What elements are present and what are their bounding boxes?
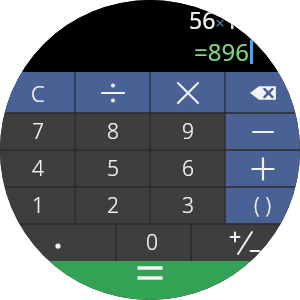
staticText: 9 [182,117,194,146]
button[interactable]: Equals [0,261,300,300]
button[interactable]: 1 [0,187,75,224]
button[interactable]: ( ) [225,187,300,224]
button[interactable]: Multiply [150,72,225,113]
button[interactable]: Backspace [225,72,300,113]
button[interactable]: C [0,72,75,113]
staticText: 7 [32,117,44,146]
staticText: 5 [107,154,119,183]
button[interactable]: Plus [225,150,300,187]
button[interactable]: 7 [0,113,75,150]
staticText: 56×16 [189,4,252,35]
button[interactable]: 56×16 [0,0,300,72]
button[interactable]: Plus minus sign [189,224,300,261]
button[interactable]: 9 [150,113,225,150]
staticText: ( ) [254,191,272,220]
button[interactable]: 2 [75,187,150,224]
staticText: 4 [32,154,44,183]
button[interactable]: 3 [150,187,225,224]
staticText: =896 [194,35,249,68]
staticText: C [31,78,45,108]
staticText: 6 [182,154,194,183]
staticText: 1 [32,191,44,220]
button[interactable]: Divide [75,72,150,113]
button[interactable]: 8 [75,113,150,150]
staticText: 3 [182,191,194,220]
button[interactable]: 4 [0,150,75,187]
button[interactable]: 6 [150,150,225,187]
staticText: 2 [107,191,119,220]
staticText: 0 [146,228,158,257]
button[interactable]: 5 [75,150,150,187]
button[interactable]: 0 [115,224,189,261]
button[interactable]: Minus [225,113,300,150]
staticText: 8 [107,117,119,146]
button[interactable]: Decimal point [0,224,115,261]
